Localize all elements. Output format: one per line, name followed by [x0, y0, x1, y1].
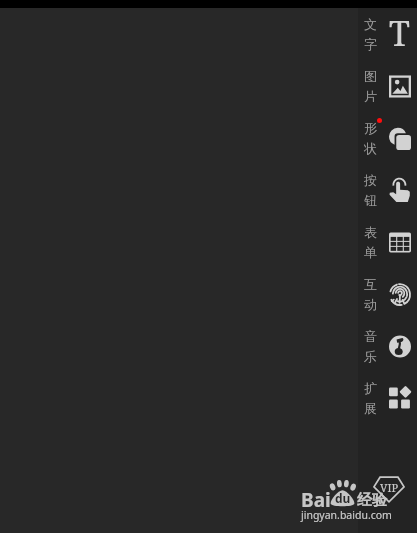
staticText: 按 [364, 172, 377, 188]
button[interactable]: Shape [358, 112, 417, 164]
button[interactable]: Image [358, 60, 417, 112]
staticText: 经验 [357, 491, 387, 510]
button[interactable]: Music [358, 320, 417, 372]
staticText: 文 [364, 16, 377, 32]
staticText: 形 [364, 120, 377, 136]
staticText: 状 [364, 140, 377, 156]
button[interactable]: Text [358, 8, 417, 60]
staticText: 片 [364, 88, 377, 104]
staticText: 单 [364, 244, 377, 260]
staticText: Bai [301, 487, 331, 513]
staticText: 扩 [364, 380, 377, 396]
staticText: 互 [364, 276, 377, 292]
staticText: 乐 [364, 348, 377, 364]
button[interactable]: Interaction [358, 268, 417, 320]
button[interactable]: Extensions [358, 372, 417, 424]
staticText: du [335, 490, 351, 506]
staticText: 展 [364, 400, 377, 416]
staticText: 钮 [364, 192, 377, 208]
staticText: 图 [364, 68, 377, 84]
staticText: 音 [364, 328, 377, 344]
button[interactable]: Form [358, 216, 417, 268]
staticText: 表 [364, 224, 377, 240]
button[interactable]: Button [358, 164, 417, 216]
staticText: VIP [380, 480, 399, 495]
staticText: 字 [364, 36, 377, 52]
staticText: jingyan.baidu.com [301, 508, 392, 522]
staticText: 动 [364, 296, 377, 312]
staticText: T [389, 10, 410, 56]
